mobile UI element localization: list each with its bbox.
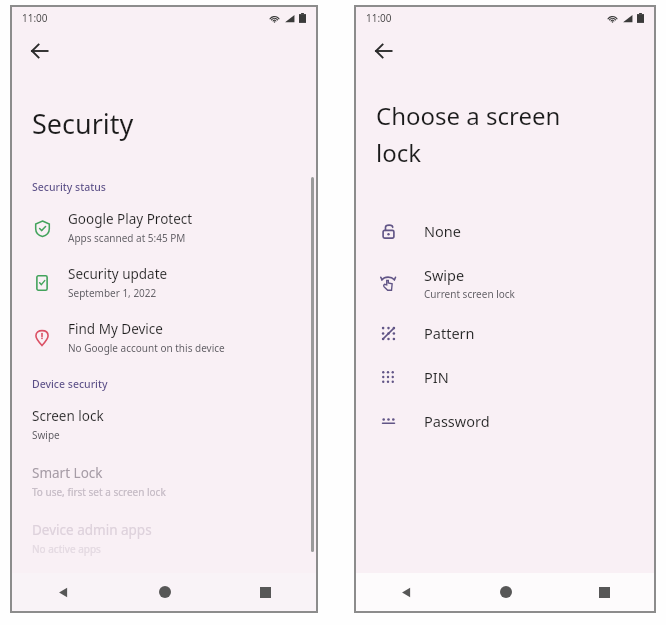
staticText: lock — [376, 136, 422, 169]
staticText: Google Play Protect — [68, 210, 193, 228]
staticText: Screen lock — [32, 407, 104, 425]
staticText: No active apps — [32, 542, 101, 556]
staticText: No Google account on this device — [68, 341, 225, 355]
staticText: None — [424, 221, 461, 241]
staticText: Password — [424, 411, 490, 431]
staticText: September 1, 2022 — [68, 286, 157, 300]
button[interactable]: Home — [456, 573, 555, 611]
staticText: Find My Device — [68, 320, 163, 338]
button[interactable]: Screen lock — [12, 407, 316, 442]
button[interactable]: PIN — [356, 367, 654, 387]
staticText: 11:00 — [366, 11, 392, 25]
button[interactable]: Google Play Protect — [12, 210, 316, 245]
staticText: Security — [32, 105, 134, 142]
staticText: PIN — [424, 367, 449, 387]
staticText: Security update — [68, 265, 168, 283]
staticText: Smart Lock — [32, 464, 103, 482]
staticText: Swipe — [424, 265, 465, 285]
button[interactable]: Smart Lock — [12, 464, 316, 499]
button[interactable]: Password — [356, 411, 654, 431]
button[interactable]: Back — [356, 573, 456, 611]
button[interactable]: Find My Device — [12, 320, 316, 355]
staticText: Apps scanned at 5:45 PM — [68, 231, 186, 245]
button[interactable]: Recents — [555, 573, 654, 611]
staticText: Device security — [32, 377, 108, 391]
staticText: Swipe — [32, 428, 60, 442]
staticText: Device admin apps — [32, 521, 152, 539]
button[interactable]: Device admin apps — [12, 521, 316, 556]
button[interactable]: Security update — [12, 265, 316, 300]
staticText: Current screen lock — [424, 287, 515, 301]
staticText: To use, first set a screen lock — [32, 485, 166, 499]
button[interactable]: Back — [368, 35, 400, 67]
staticText: Pattern — [424, 323, 475, 343]
staticText: 11:00 — [22, 11, 48, 25]
staticText: Security status — [32, 180, 106, 194]
staticText: Choose a screen — [376, 99, 561, 132]
button[interactable]: Back — [24, 35, 56, 67]
button[interactable]: None — [356, 221, 654, 241]
button[interactable]: Home — [114, 573, 215, 611]
button[interactable]: Pattern — [356, 323, 654, 343]
button[interactable]: Swipe — [356, 265, 654, 301]
button[interactable]: Back — [12, 573, 114, 611]
button[interactable]: Recents — [215, 573, 316, 611]
